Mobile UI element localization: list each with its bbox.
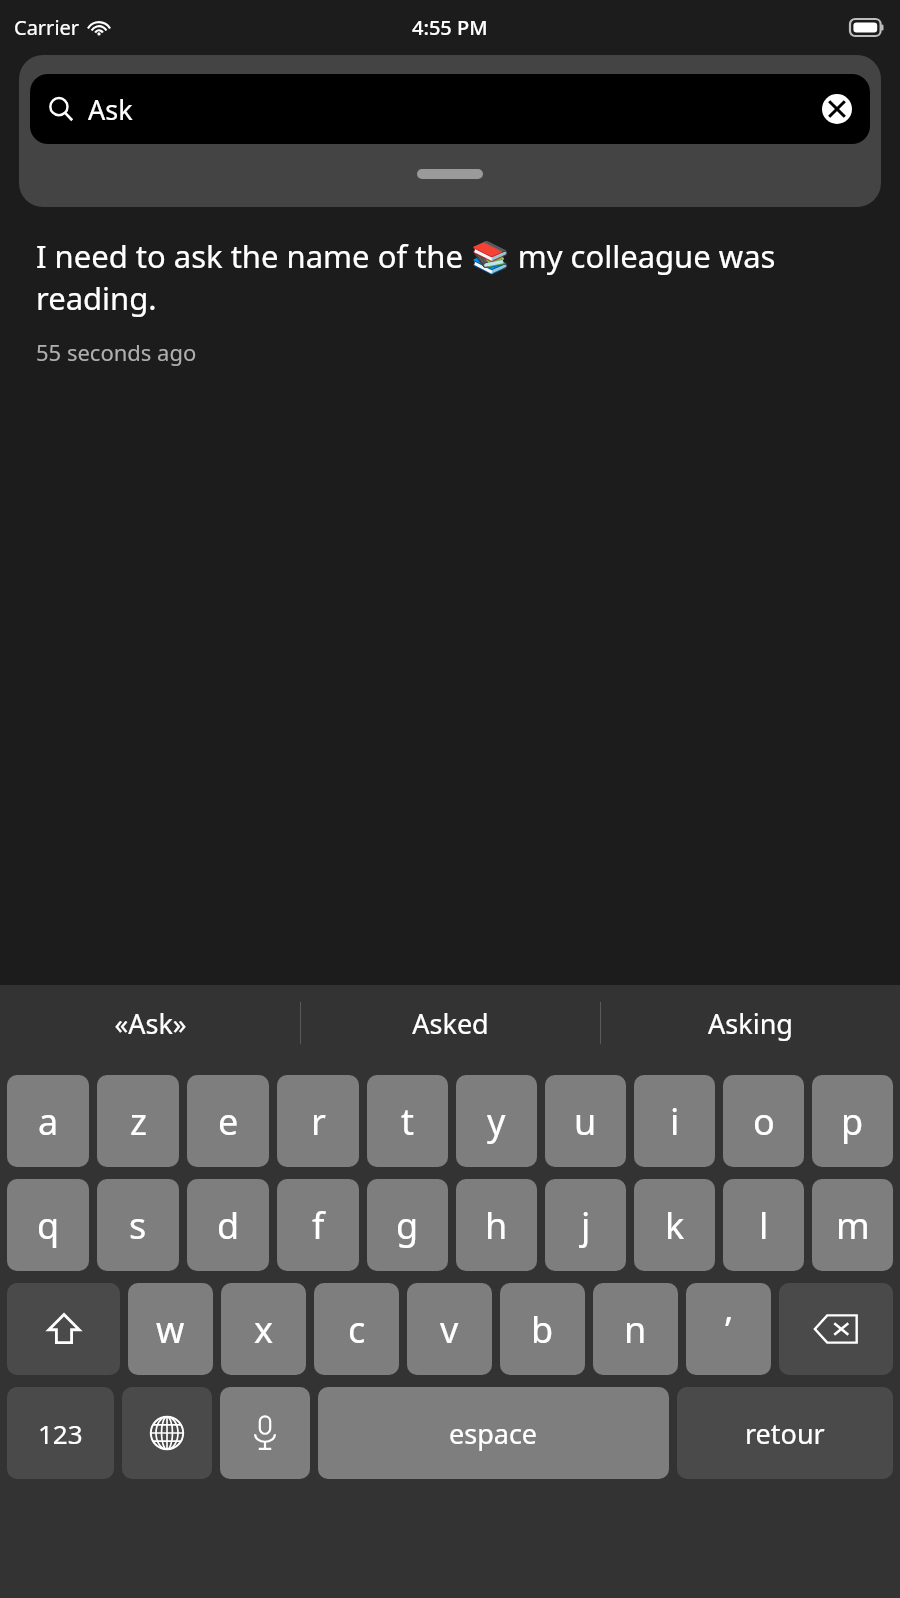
button[interactable]: Ask xyxy=(30,74,870,144)
staticText: Asked xyxy=(412,1005,489,1042)
button[interactable]: m xyxy=(812,1179,893,1271)
staticText: l xyxy=(759,1201,769,1250)
staticText: 55 seconds ago xyxy=(36,337,197,367)
button[interactable]: u xyxy=(545,1075,626,1167)
staticText: z xyxy=(130,1097,147,1146)
button[interactable]: w xyxy=(128,1283,213,1375)
button[interactable]: ’ xyxy=(686,1283,771,1375)
button[interactable]: i xyxy=(634,1075,715,1167)
button[interactable]: g xyxy=(367,1179,448,1271)
button[interactable]: Next keyboard xyxy=(122,1387,212,1479)
staticText: t xyxy=(401,1097,414,1146)
staticText: s xyxy=(129,1201,147,1250)
button[interactable]: x xyxy=(221,1283,306,1375)
staticText: k xyxy=(665,1201,685,1250)
button[interactable]: l xyxy=(723,1179,804,1271)
button[interactable]: t xyxy=(367,1075,448,1167)
staticText: e xyxy=(218,1097,239,1146)
staticText: I need to ask the name of the 📚 my colle… xyxy=(36,235,864,319)
staticText: r xyxy=(311,1097,326,1146)
button[interactable]: Asked xyxy=(301,985,600,1061)
button[interactable]: «Ask» xyxy=(0,985,300,1061)
button[interactable]: Backspace xyxy=(779,1283,893,1375)
button[interactable]: Shift xyxy=(7,1283,120,1375)
staticText: h xyxy=(485,1201,508,1250)
staticText: i xyxy=(670,1097,680,1146)
button[interactable]: k xyxy=(634,1179,715,1271)
staticText: «Ask» xyxy=(114,1005,187,1042)
staticText: y xyxy=(487,1097,506,1146)
staticText: Ask xyxy=(88,91,133,128)
staticText: retour xyxy=(745,1415,825,1452)
staticText: o xyxy=(753,1097,775,1146)
staticText: b xyxy=(531,1305,554,1354)
button[interactable]: b xyxy=(500,1283,585,1375)
button[interactable]: 123 xyxy=(7,1387,114,1479)
staticText: f xyxy=(312,1201,325,1250)
button[interactable]: Asking xyxy=(601,985,900,1061)
button[interactable]: d xyxy=(187,1179,269,1271)
staticText: d xyxy=(217,1201,240,1250)
button[interactable]: e xyxy=(187,1075,269,1167)
button[interactable]: espace xyxy=(318,1387,669,1479)
button[interactable]: a xyxy=(7,1075,89,1167)
staticText: a xyxy=(38,1097,59,1146)
staticText: c xyxy=(348,1305,366,1354)
staticText: 123 xyxy=(38,1416,83,1451)
button[interactable]: v xyxy=(407,1283,492,1375)
staticText: j xyxy=(581,1201,591,1250)
button[interactable]: q xyxy=(7,1179,89,1271)
staticText: 4:55 PM xyxy=(412,14,488,41)
staticText: Asking xyxy=(708,1005,793,1042)
button[interactable]: n xyxy=(593,1283,678,1375)
staticText: x xyxy=(254,1305,274,1354)
button[interactable]: Clear search xyxy=(822,94,852,124)
staticText: p xyxy=(841,1097,864,1146)
staticText: n xyxy=(624,1305,647,1354)
staticText: q xyxy=(37,1201,60,1250)
button[interactable]: retour xyxy=(677,1387,893,1479)
staticText: g xyxy=(396,1201,419,1250)
button[interactable]: o xyxy=(723,1075,804,1167)
staticText: v xyxy=(440,1305,459,1354)
staticText: u xyxy=(574,1097,597,1146)
button[interactable]: j xyxy=(545,1179,626,1271)
button[interactable]: s xyxy=(97,1179,179,1271)
staticText: Carrier xyxy=(14,14,80,41)
staticText: ’ xyxy=(725,1305,732,1354)
button[interactable]: z xyxy=(97,1075,179,1167)
button[interactable]: f xyxy=(277,1179,359,1271)
button[interactable]: Dictation xyxy=(220,1387,310,1479)
staticText: m xyxy=(836,1201,870,1250)
button[interactable]: c xyxy=(314,1283,399,1375)
button[interactable]: r xyxy=(277,1075,359,1167)
button[interactable]: p xyxy=(812,1075,893,1167)
button[interactable]: y xyxy=(456,1075,537,1167)
staticText: espace xyxy=(449,1415,538,1452)
staticText: w xyxy=(156,1305,185,1354)
button[interactable]: h xyxy=(456,1179,537,1271)
